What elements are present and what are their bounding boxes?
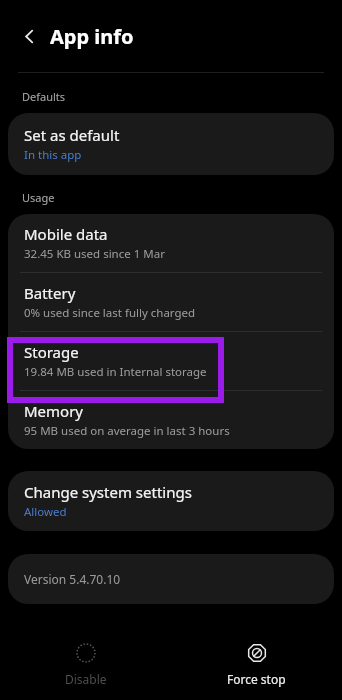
staticText: Battery	[24, 283, 76, 303]
staticText: Memory	[24, 401, 84, 421]
staticText: In this app	[24, 147, 82, 163]
staticText: App info	[50, 23, 134, 50]
staticText: Allowed	[24, 504, 67, 520]
button[interactable]: Force stop	[171, 630, 342, 700]
button[interactable]: Back	[13, 20, 45, 52]
staticText: 19.84 MB used in Internal storage	[24, 364, 207, 380]
staticText: Change system settings	[24, 482, 192, 502]
staticText: 0% used since last fully charged	[24, 305, 196, 321]
staticText: Usage	[22, 190, 55, 205]
button[interactable]: Storage	[8, 332, 334, 390]
staticText: Version 5.4.70.10	[24, 571, 121, 587]
staticText: Disable	[65, 671, 107, 687]
staticText: Storage	[24, 342, 79, 362]
staticText: 32.45 KB used since 1 Mar	[24, 246, 165, 262]
button[interactable]: Change system settings	[8, 471, 334, 531]
button[interactable]: Disable	[0, 630, 171, 700]
staticText: Force stop	[227, 671, 286, 687]
button[interactable]: Battery	[8, 273, 334, 331]
button[interactable]: Memory	[8, 391, 334, 449]
button[interactable]: Set as default	[8, 113, 334, 175]
staticText: Defaults	[22, 89, 66, 104]
staticText: Set as default	[24, 125, 120, 145]
staticText: 95 MB used on average in last 3 hours	[24, 423, 230, 439]
staticText: Mobile data	[24, 224, 108, 244]
button[interactable]: Mobile data	[8, 214, 334, 272]
